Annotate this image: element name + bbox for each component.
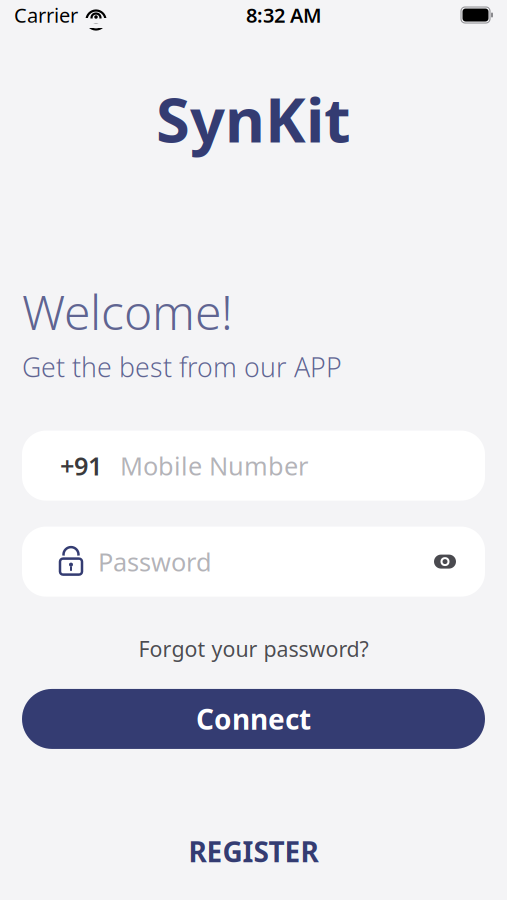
button[interactable]: Password [22,527,485,597]
staticText: +91 [60,449,102,482]
staticText: Welcome! [22,279,233,343]
staticText: Carrier [14,2,78,28]
staticText: 8:32 AM [246,2,322,28]
staticText: Forgot your password? [138,635,368,663]
staticText: Connect [196,700,311,737]
button[interactable]: REGISTER [174,827,332,876]
button[interactable]: Connect [22,689,485,749]
staticText: Mobile Number [120,449,308,482]
staticText: Get the best from our APP [22,349,342,385]
button[interactable]: +91 [22,431,485,501]
staticText: SynKit [156,78,351,159]
staticText: Password [98,545,212,578]
staticText: REGISTER [188,833,318,870]
button[interactable]: Forgot your password? [128,631,378,667]
